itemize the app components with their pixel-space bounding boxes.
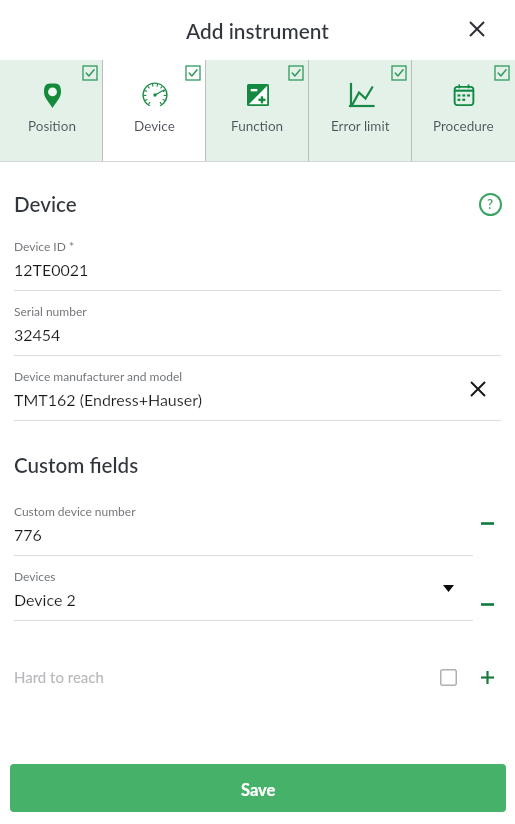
staticText: Error limit (331, 118, 390, 134)
staticText: Position (28, 118, 76, 134)
staticText: Hard to reach (14, 668, 104, 686)
staticText: Device ID * (14, 239, 75, 253)
staticText: Device 2 (14, 590, 76, 609)
staticText: Add instrument (186, 18, 329, 43)
button[interactable]: Remove custom field (469, 510, 505, 536)
staticText: Custom device number (14, 504, 136, 518)
staticText: 776 (14, 525, 42, 544)
button[interactable]: Function (206, 60, 309, 161)
button[interactable]: Help (475, 189, 505, 219)
staticText: Custom fields (14, 453, 139, 478)
button[interactable]: Save (10, 764, 506, 812)
staticText: ? (487, 196, 494, 212)
button[interactable]: Procedure (412, 60, 515, 161)
staticText: TMT162 (Endress+Hauser) (14, 390, 202, 409)
staticText: Save (241, 780, 276, 800)
staticText: Function (231, 118, 284, 134)
staticText: Device (134, 118, 175, 134)
button[interactable]: Clear field (463, 374, 493, 404)
button[interactable]: Hard to reach checkbox (434, 663, 462, 691)
button[interactable]: Error limit (309, 60, 412, 161)
staticText: Procedure (433, 118, 494, 134)
staticText: Devices (14, 569, 56, 583)
button[interactable]: Position (0, 60, 103, 161)
button[interactable]: Add custom field (473, 663, 501, 691)
button[interactable]: Remove custom field (469, 591, 505, 617)
staticText: 32454 (14, 325, 61, 344)
staticText: Serial number (14, 304, 87, 318)
staticText: Device manufacturer and model (14, 369, 183, 383)
button[interactable]: Close (461, 14, 493, 46)
button[interactable]: Device (103, 60, 206, 161)
staticText: Device (14, 192, 77, 217)
staticText: 12TE0021 (14, 260, 89, 279)
